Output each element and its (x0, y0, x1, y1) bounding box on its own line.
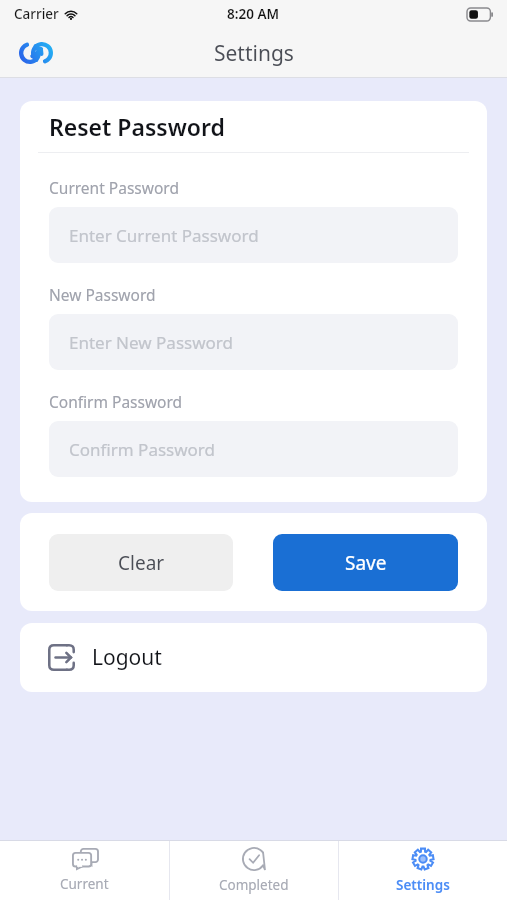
staticText: Carrier (14, 5, 59, 23)
staticText: Enter Current Password (69, 224, 259, 247)
button[interactable]: Current (0, 841, 169, 900)
staticText: Clear (118, 550, 165, 576)
button[interactable]: Completed (170, 841, 338, 900)
button[interactable]: Save (273, 534, 458, 591)
staticText: New Password (49, 284, 156, 305)
button[interactable]: Settings (339, 841, 507, 900)
staticText: Settings (214, 39, 294, 68)
staticText: Current (60, 875, 109, 893)
staticText: Current Password (49, 177, 179, 198)
button[interactable]: Enter New Password (49, 314, 458, 370)
staticText: Save (345, 550, 387, 576)
staticText: Confirm Password (69, 438, 215, 461)
staticText: Reset Password (49, 111, 225, 142)
staticText: Logout (92, 643, 162, 672)
button[interactable]: Logout (20, 623, 487, 692)
staticText: 8:20 AM (227, 5, 280, 23)
button[interactable]: Confirm Password (49, 421, 458, 477)
staticText: Enter New Password (69, 331, 233, 354)
staticText: Confirm Password (49, 391, 183, 412)
staticText: Settings (396, 876, 450, 894)
button[interactable]: App logo (18, 35, 54, 71)
button[interactable]: Clear (49, 534, 233, 591)
staticText: Completed (219, 876, 289, 894)
button[interactable]: Enter Current Password (49, 207, 458, 263)
